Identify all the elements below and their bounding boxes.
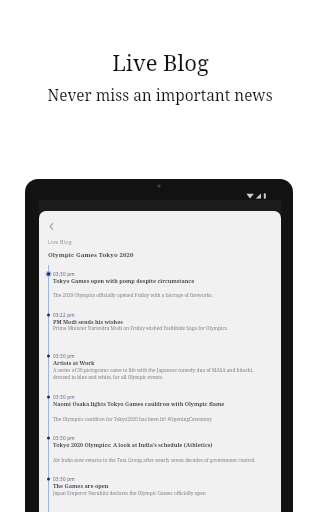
staticText: Tokyo Games open with pomp despite circu… (53, 277, 195, 284)
button[interactable]: 03:30 pm (39, 394, 281, 435)
staticText: PM Modi sends his wishes (53, 318, 123, 325)
staticText: Artists at Work (53, 359, 95, 366)
staticText: The Games are open (53, 482, 109, 489)
staticText: Air India now returns to the Tata Group … (53, 457, 256, 463)
staticText: 03:30 pm (53, 435, 75, 441)
staticText: Never miss an important news (47, 85, 273, 106)
button[interactable]: Back (43, 218, 59, 234)
button[interactable]: 03:30 pm (39, 271, 281, 312)
staticText: Live Blog (48, 239, 72, 246)
staticText: A series of 50 pictograms came to life w… (53, 367, 271, 381)
staticText: Japan Emperor Naruhito declares the Olym… (53, 490, 206, 496)
button[interactable]: 03:30 pm (39, 476, 281, 512)
staticText: 03:30 pm (53, 394, 75, 400)
staticText: Olympic Games Tokyo 2020 (48, 251, 134, 259)
staticText: Naomi Osaka lights Tokyo Games cauldron … (53, 400, 225, 407)
staticText: The 2020 Olympics officially opened Frid… (53, 292, 213, 298)
staticText: The Olympics cauldron for Tokyo2020 has … (53, 416, 212, 422)
staticText: Tokyo 2020 Olympics: A look at India's s… (53, 441, 213, 448)
button[interactable]: 03:30 pm (39, 435, 281, 476)
staticText: 03:22 pm (53, 312, 75, 318)
button[interactable]: 03:22 pm (39, 312, 281, 353)
staticText: 03:30 pm (53, 353, 75, 359)
staticText: 03:30 pm (53, 271, 75, 277)
staticText: 03:30 pm (53, 476, 75, 482)
button[interactable]: 03:30 pm (39, 353, 281, 394)
staticText: Prime Minister Narendra Modi on Friday w… (53, 325, 228, 331)
staticText: Live Blog (112, 47, 209, 77)
